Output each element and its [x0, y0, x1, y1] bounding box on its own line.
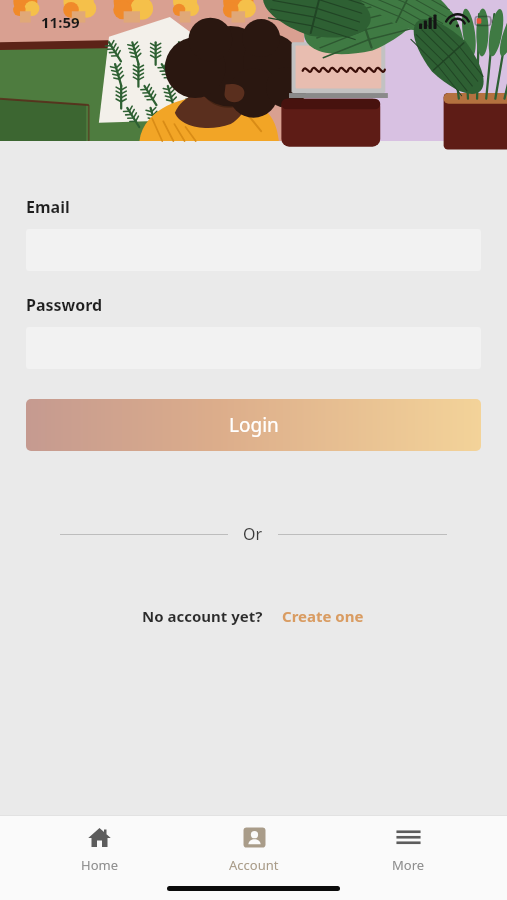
button[interactable]: Home: [44, 816, 154, 874]
button[interactable]: More: [353, 816, 463, 874]
staticText: Create one: [282, 606, 364, 626]
staticText: More: [392, 856, 425, 874]
button[interactable]: Account: [199, 816, 309, 874]
staticText: Account: [229, 856, 279, 874]
staticText: Or: [243, 523, 263, 545]
staticText: No account yet?: [142, 606, 263, 626]
button[interactable]: Login: [26, 399, 481, 451]
staticText: Home: [81, 856, 118, 874]
staticText: Email: [26, 196, 70, 218]
other: Account: [242, 825, 267, 850]
other: More: [396, 825, 421, 850]
staticText: Login: [229, 412, 279, 438]
staticText: Password: [26, 294, 103, 316]
other: Home: [87, 825, 112, 850]
staticText: 11:59: [41, 12, 80, 32]
button[interactable]: Create one: [280, 602, 366, 630]
